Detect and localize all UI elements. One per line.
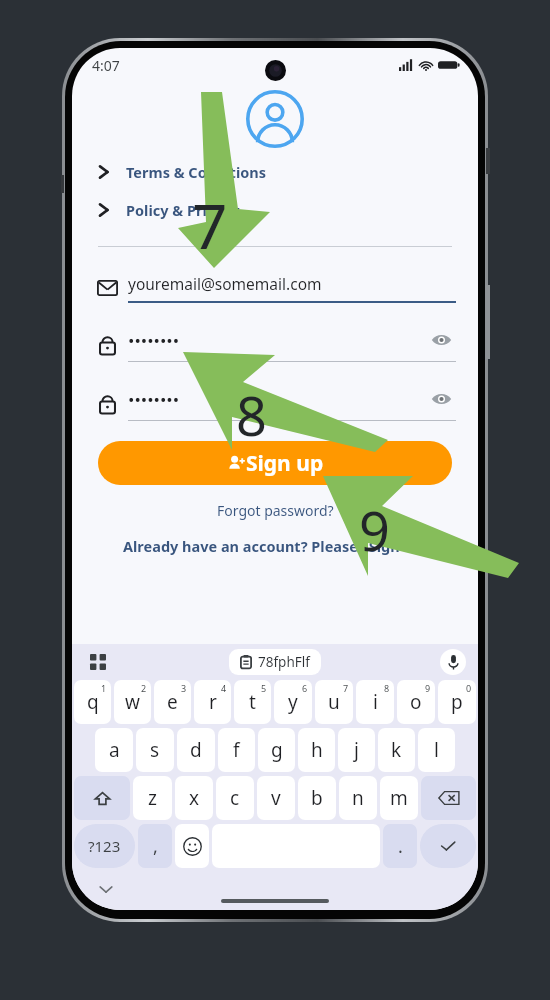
button[interactable]: 78fphFlf — [229, 649, 321, 675]
button[interactable]: x — [175, 776, 213, 820]
button[interactable]: d — [177, 728, 215, 772]
staticText: j — [354, 737, 359, 763]
staticText: k — [391, 737, 402, 763]
button[interactable]: Forgot password? — [209, 499, 342, 522]
button[interactable]: Sign up — [98, 441, 452, 485]
staticText: 7 — [192, 183, 228, 267]
button[interactable]: j — [338, 728, 375, 772]
staticText: •••••••• — [128, 388, 180, 411]
staticText: 8 — [236, 378, 267, 452]
staticText: 8 — [384, 682, 390, 694]
staticText: x — [189, 785, 200, 811]
button[interactable]: Policy & Privacy — [72, 198, 478, 222]
button[interactable]: o — [397, 680, 435, 724]
staticText: g — [271, 737, 283, 763]
staticText: 78fphFlf — [258, 653, 310, 671]
button[interactable]: m — [380, 776, 418, 820]
button[interactable]: Terms & Conditions — [72, 160, 478, 184]
button[interactable]: Email — [94, 273, 456, 303]
staticText: Policy & Privacy — [126, 200, 240, 220]
staticText: 2 — [141, 682, 147, 694]
button[interactable]: h — [298, 728, 335, 772]
button[interactable]: . — [383, 824, 417, 868]
button[interactable]: Emoji — [175, 824, 209, 868]
staticText: v — [271, 785, 281, 811]
staticText: 1 — [101, 682, 107, 694]
staticText: u — [328, 689, 340, 715]
staticText: n — [352, 785, 364, 811]
button[interactable]: l — [418, 728, 455, 772]
button[interactable]: w — [114, 680, 151, 724]
button[interactable]: Shift — [74, 776, 130, 820]
staticText: 6 — [302, 682, 308, 694]
button[interactable]: i — [356, 680, 394, 724]
staticText: i — [373, 689, 378, 715]
button[interactable]: Backspace — [421, 776, 476, 820]
button[interactable]: p — [438, 680, 476, 724]
staticText: d — [190, 737, 202, 763]
button[interactable]: t — [234, 680, 271, 724]
button[interactable]: , — [138, 824, 172, 868]
staticText: o — [410, 689, 422, 715]
button[interactable]: Voice input — [440, 649, 466, 675]
button[interactable]: Keyboard options — [84, 648, 112, 676]
button[interactable]: c — [216, 776, 254, 820]
staticText: w — [125, 689, 140, 715]
staticText: f — [233, 737, 240, 763]
button[interactable]: s — [136, 728, 174, 772]
staticText: q — [87, 689, 99, 715]
staticText: 9 — [359, 493, 390, 567]
staticText: p — [451, 689, 463, 715]
staticText: r — [209, 689, 217, 715]
button[interactable]: y — [274, 680, 312, 724]
button[interactable]: Hide keyboard — [94, 877, 118, 901]
staticText: s — [150, 737, 160, 763]
staticText: 7 — [343, 682, 349, 694]
button[interactable]: Confirm password — [94, 384, 456, 421]
button[interactable]: v — [257, 776, 295, 820]
button[interactable]: Account — [244, 88, 306, 150]
staticText: •••••••• — [128, 329, 180, 352]
other: Password — [94, 331, 120, 357]
other: Confirm password — [94, 390, 120, 416]
button[interactable]: u — [315, 680, 353, 724]
button[interactable]: b — [298, 776, 336, 820]
staticText: Forgot password? — [217, 501, 334, 520]
other: Email — [94, 275, 120, 301]
staticText: b — [311, 785, 323, 811]
button[interactable]: r — [194, 680, 231, 724]
button[interactable]: q — [74, 680, 111, 724]
button[interactable]: k — [378, 728, 415, 772]
button[interactable]: f — [218, 728, 255, 772]
staticText: m — [390, 785, 408, 811]
staticText: 5 — [261, 682, 267, 694]
staticText: , — [153, 834, 158, 859]
staticText: z — [148, 785, 157, 811]
staticText: t — [249, 689, 256, 715]
staticText: h — [311, 737, 323, 763]
staticText: . — [398, 834, 403, 859]
button[interactable]: ?123 — [74, 824, 135, 868]
button[interactable]: Show password — [426, 384, 456, 414]
button[interactable]: z — [133, 776, 172, 820]
staticText: l — [434, 737, 439, 763]
button[interactable]: Show password — [426, 325, 456, 355]
button[interactable]: Already have an account? Please "Sign in… — [115, 534, 436, 558]
staticText: y — [288, 689, 298, 715]
button[interactable]: Password — [94, 325, 456, 362]
staticText: 4 — [221, 682, 227, 694]
button[interactable]: a — [95, 728, 133, 772]
button[interactable]: g — [258, 728, 295, 772]
staticText: a — [109, 737, 120, 763]
button[interactable]: Enter — [420, 824, 476, 868]
staticText: e — [167, 689, 178, 715]
button[interactable]: e — [154, 680, 191, 724]
staticText: 3 — [181, 682, 187, 694]
staticText: youremail@somemail.com — [128, 273, 322, 294]
staticText: 9 — [425, 682, 431, 694]
staticText: 4:07 — [92, 56, 120, 75]
button[interactable]: n — [339, 776, 377, 820]
staticText: 0 — [466, 682, 472, 694]
staticText: Terms & Conditions — [126, 162, 267, 182]
